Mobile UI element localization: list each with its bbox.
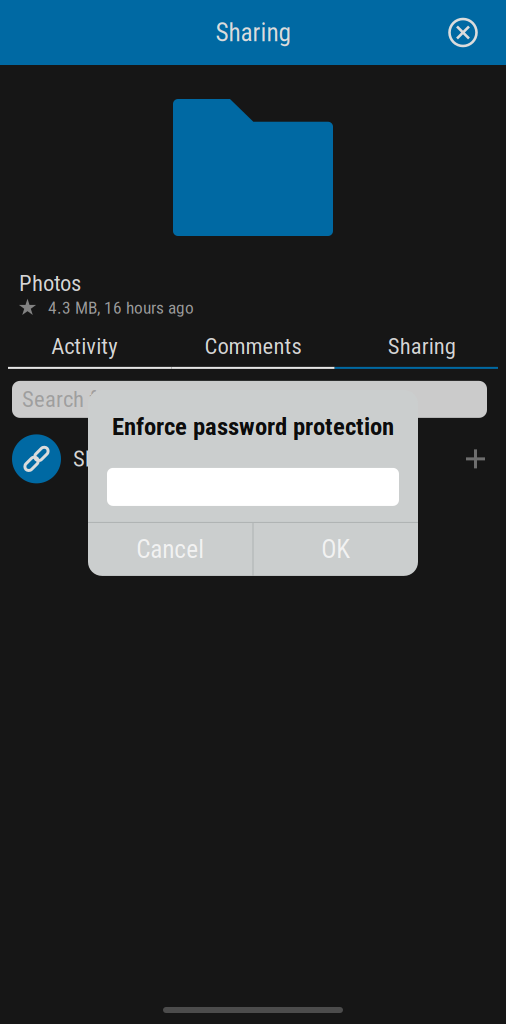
button[interactable]: OK (253, 523, 418, 576)
staticText: Sharing (388, 333, 456, 360)
staticText: Photos (19, 270, 81, 297)
button[interactable]: Cancel (88, 523, 252, 576)
button[interactable]: Close (440, 9, 486, 55)
staticText: Sharing (215, 18, 290, 47)
button[interactable]: Comments (169, 326, 337, 367)
staticText: Comments (204, 333, 301, 360)
button[interactable]: Share link (0, 429, 506, 489)
staticText: Search for users (22, 386, 168, 413)
staticText: Share link (73, 446, 161, 472)
button[interactable]: Sharing (337, 326, 506, 367)
staticText: Enforce password protection (112, 412, 394, 441)
staticText: Cancel (136, 535, 204, 564)
staticText: 4.3 MB, 16 hours ago (48, 298, 194, 318)
staticText: OK (321, 535, 350, 564)
button[interactable]: Search for users (12, 381, 487, 418)
button[interactable]: Activity (0, 326, 169, 367)
staticText: Activity (51, 333, 117, 360)
